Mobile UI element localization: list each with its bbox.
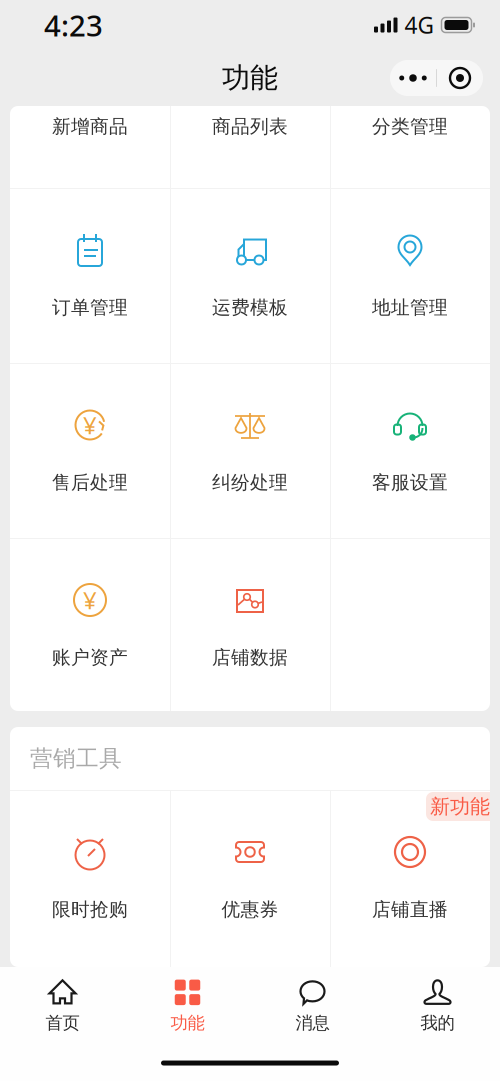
staticText: 店铺直播 xyxy=(372,898,448,921)
button[interactable]: 店铺数据 xyxy=(170,539,330,711)
button[interactable]: 我的 xyxy=(375,967,500,1045)
button[interactable]: Close mini program xyxy=(437,60,483,96)
button[interactable]: 客服设置 xyxy=(330,364,490,538)
button[interactable]: 消息 xyxy=(250,967,375,1045)
staticText: ¥ xyxy=(83,584,97,616)
button[interactable]: 商品列表 xyxy=(170,106,330,188)
staticText: 首页 xyxy=(45,1012,79,1034)
button[interactable]: ¥ xyxy=(10,539,170,711)
button[interactable]: 分类管理 xyxy=(330,106,490,188)
staticText: 限时抢购 xyxy=(52,898,128,921)
staticText: 账户资产 xyxy=(52,646,128,669)
staticText: 功能 xyxy=(222,61,278,95)
staticText: 店铺数据 xyxy=(212,646,288,669)
staticText: 4G xyxy=(404,10,434,40)
button[interactable]: ¥ xyxy=(10,364,170,538)
button[interactable]: 运费模板 xyxy=(170,189,330,363)
button[interactable]: 首页 xyxy=(0,967,125,1045)
button[interactable]: 限时抢购 xyxy=(10,791,170,967)
staticText: 我的 xyxy=(420,1012,454,1034)
button[interactable]: More options xyxy=(390,60,436,96)
staticText: 4:23 xyxy=(44,5,103,44)
staticText: 订单管理 xyxy=(52,296,128,319)
button[interactable]: 纠纷处理 xyxy=(170,364,330,538)
staticText: 售后处理 xyxy=(52,471,128,494)
staticText: 纠纷处理 xyxy=(212,471,288,494)
button[interactable]: 新增商品 xyxy=(10,106,170,188)
staticText: 分类管理 xyxy=(372,115,448,138)
staticText: 地址管理 xyxy=(372,296,448,319)
button[interactable]: 订单管理 xyxy=(10,189,170,363)
staticText: 新增商品 xyxy=(52,115,128,138)
staticText: 商品列表 xyxy=(212,115,288,138)
staticText: 新功能 xyxy=(430,794,490,819)
staticText: 功能 xyxy=(170,1012,204,1034)
staticText: 消息 xyxy=(295,1012,329,1034)
button[interactable]: 功能 xyxy=(125,967,250,1045)
staticText: 营销工具 xyxy=(30,745,122,772)
staticText: 运费模板 xyxy=(212,296,288,319)
button[interactable]: 店铺直播 xyxy=(330,791,490,967)
staticText: 客服设置 xyxy=(372,471,448,494)
staticText: 优惠券 xyxy=(221,898,278,921)
button[interactable]: 地址管理 xyxy=(330,189,490,363)
button[interactable]: 优惠券 xyxy=(170,791,330,967)
staticText: ¥ xyxy=(83,409,97,441)
